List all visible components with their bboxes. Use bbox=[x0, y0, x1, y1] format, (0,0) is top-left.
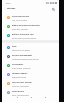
staticText: Tips and user manual bbox=[12, 81, 32, 84]
button[interactable]: Advanced features bbox=[2, 13, 59, 22]
button[interactable]: Battery and device care bbox=[2, 31, 59, 40]
staticText: General management bbox=[12, 54, 33, 57]
staticText: Vision, Hearing, Interaction bbox=[12, 67, 31, 69]
button[interactable]: Software update bbox=[2, 70, 59, 79]
button[interactable]: Home bbox=[29, 95, 34, 99]
staticText: Accessibility bbox=[12, 63, 24, 66]
button[interactable]: Digital Wellbeing and parental bbox=[2, 22, 59, 31]
button[interactable]: Search bbox=[50, 6, 56, 12]
staticText: Software update bbox=[12, 72, 28, 75]
staticText: 9:41 bbox=[6, 1, 11, 4]
button[interactable]: General management bbox=[2, 52, 59, 61]
staticText: Battery and device care bbox=[12, 33, 34, 36]
staticText: Settings bbox=[7, 7, 16, 10]
staticText: About phone bbox=[12, 90, 24, 93]
staticText: Download and install bbox=[12, 76, 27, 78]
button[interactable]: Back bbox=[43, 95, 48, 99]
button[interactable]: Recents bbox=[15, 95, 20, 99]
button[interactable]: Apps bbox=[2, 43, 59, 52]
staticText: Digital Wellbeing and parental bbox=[12, 24, 40, 27]
staticText: Status, Legal information bbox=[12, 94, 29, 96]
staticText: Labs, Link to Windows bbox=[12, 19, 27, 21]
staticText: Apps bbox=[12, 45, 17, 48]
staticText: Language and keyboard, Date and time bbox=[12, 58, 39, 60]
staticText: Default apps, App settings bbox=[12, 49, 30, 51]
staticText: Advanced features bbox=[12, 15, 30, 18]
button[interactable]: Accessibility bbox=[2, 61, 59, 70]
button[interactable]: About phone bbox=[2, 88, 59, 97]
button[interactable]: Tips and user manual bbox=[2, 79, 59, 88]
staticText: Useful tips, New features bbox=[12, 85, 29, 87]
staticText: Storage, Memory, Device protection bbox=[12, 37, 37, 39]
staticText: Screen time, App timers bbox=[12, 28, 29, 30]
